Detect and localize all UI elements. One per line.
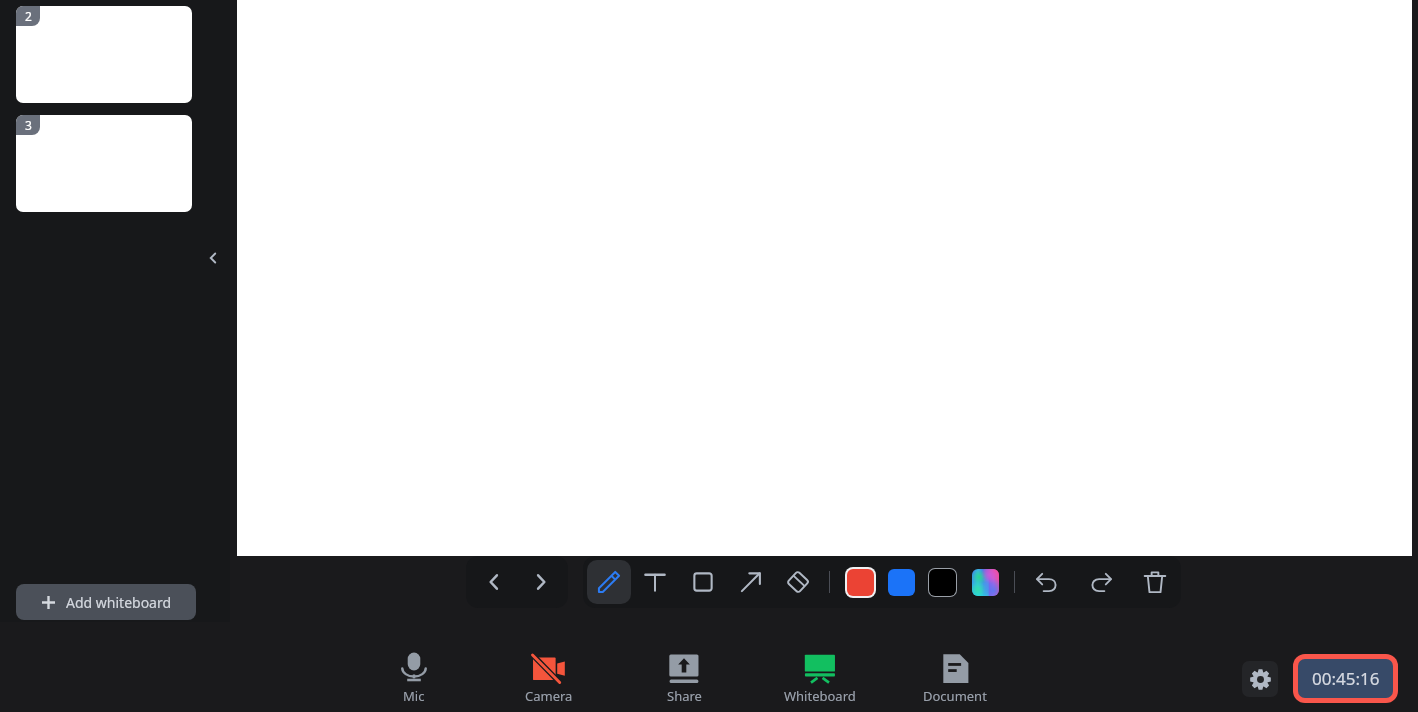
button[interactable]: Whiteboard page 2 xyxy=(16,6,192,103)
staticText: Document xyxy=(923,687,987,705)
button[interactable]: Undo xyxy=(1025,560,1069,604)
staticText: Mic xyxy=(403,687,425,705)
button[interactable]: Red colour xyxy=(840,562,880,602)
staticText: Whiteboard xyxy=(784,687,856,705)
button[interactable]: Whiteboard page 3 xyxy=(16,115,192,212)
button[interactable]: Pen tool xyxy=(587,560,631,604)
button[interactable]: Previous page xyxy=(472,560,516,604)
button[interactable]: Collapse panel xyxy=(197,242,229,274)
staticText: 2 xyxy=(25,8,32,24)
button[interactable]: Delete all xyxy=(1133,560,1177,604)
button[interactable]: Blue colour xyxy=(881,562,921,602)
button[interactable]: Arrow tool xyxy=(729,560,773,604)
button[interactable]: Eraser tool xyxy=(776,560,820,604)
button[interactable]: Next page xyxy=(519,560,563,604)
staticText: 00:45:16 xyxy=(1312,667,1380,690)
button[interactable]: Rectangle tool xyxy=(681,560,725,604)
button[interactable]: Document xyxy=(893,640,1017,712)
button[interactable]: Add whiteboard xyxy=(16,584,196,620)
staticText: 3 xyxy=(25,117,32,133)
button[interactable]: Mic xyxy=(352,640,476,712)
button[interactable]: Gradient colour xyxy=(965,562,1005,602)
button[interactable]: Whiteboard xyxy=(758,640,882,712)
button[interactable]: Black colour xyxy=(922,562,962,602)
button[interactable]: Settings xyxy=(1242,661,1278,697)
staticText: Add whiteboard xyxy=(66,593,172,612)
staticText: Share xyxy=(667,687,702,705)
button[interactable]: Share xyxy=(622,640,746,712)
button[interactable]: Camera xyxy=(487,640,611,712)
button[interactable]: Redo xyxy=(1079,560,1123,604)
staticText: Camera xyxy=(525,687,573,705)
button[interactable]: 00:45:16 xyxy=(1298,659,1393,698)
button[interactable]: Text tool xyxy=(633,560,677,604)
